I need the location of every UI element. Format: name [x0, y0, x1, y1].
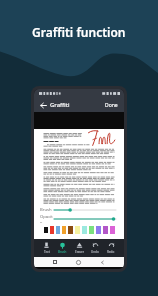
button[interactable]: Home: [76, 260, 81, 265]
button[interactable]: Undo: [90, 242, 100, 254]
staticText: Brush: [40, 207, 52, 213]
staticText: Opacity: [40, 214, 54, 223]
button[interactable]: Brush: [57, 242, 68, 254]
button[interactable]: Text: [42, 242, 51, 254]
button[interactable]: Back: [100, 260, 105, 265]
staticText: Eraser: [75, 250, 84, 254]
staticText: Text: [44, 250, 50, 254]
button[interactable]: Done: [104, 100, 119, 111]
staticText: Redo: [107, 250, 115, 254]
staticText: Graffiti function: [32, 24, 126, 40]
button[interactable]: Redo: [106, 242, 116, 254]
staticText: Graffiti: [50, 101, 70, 109]
button[interactable]: Brush: [40, 205, 116, 214]
button[interactable]: Opacity: [40, 214, 116, 223]
button[interactable]: Recents: [53, 260, 57, 264]
staticText: Brush: [58, 250, 67, 254]
button[interactable]: Eraser: [74, 242, 85, 254]
button[interactable]: Back: [38, 100, 48, 110]
staticText: Undo: [91, 250, 99, 254]
staticText: Done: [105, 102, 118, 109]
